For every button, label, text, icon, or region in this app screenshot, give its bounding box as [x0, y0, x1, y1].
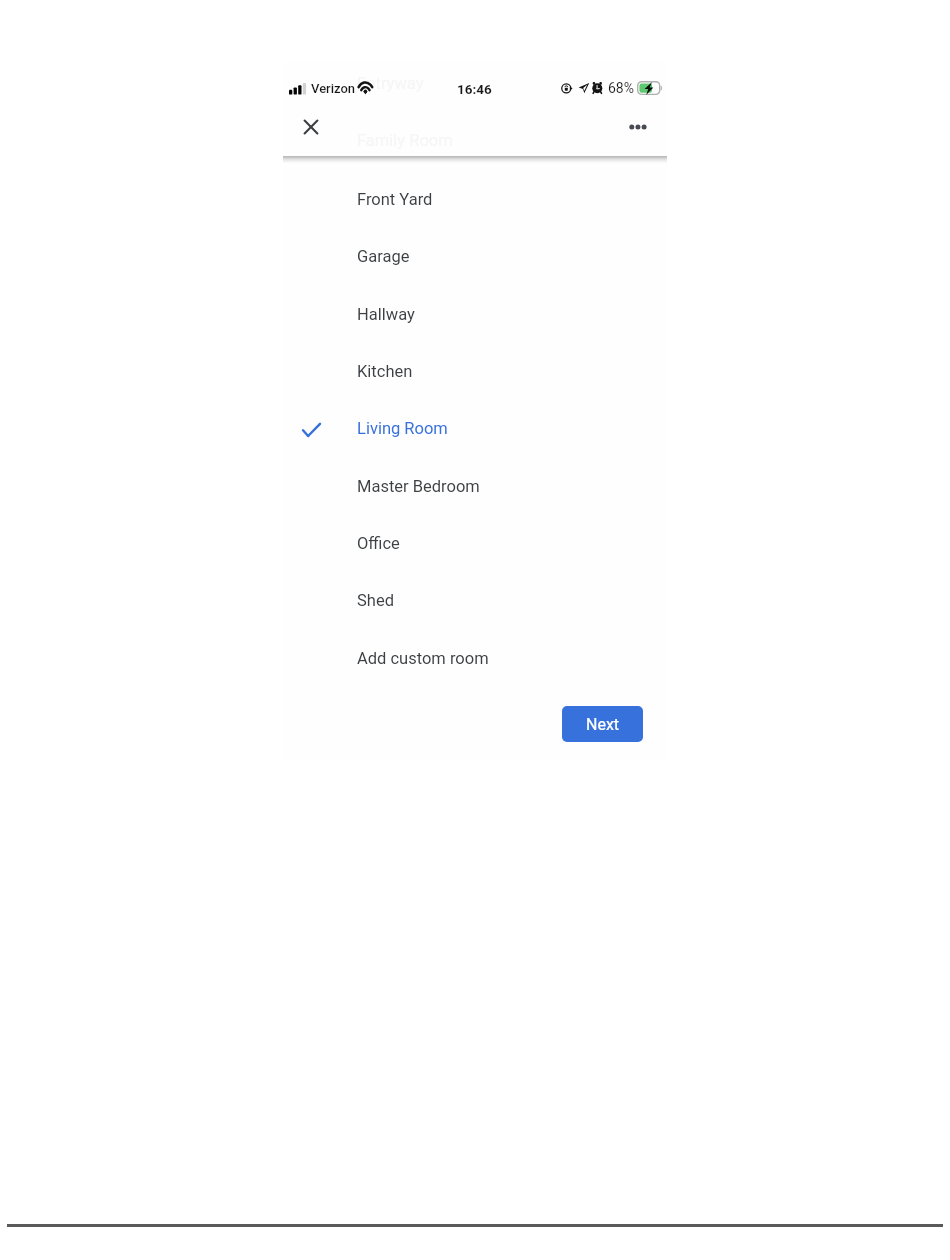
staticText: Entryway: [357, 74, 424, 93]
staticText: Hallway: [357, 305, 415, 324]
staticText: Shed: [357, 591, 394, 610]
button[interactable]: Office: [283, 515, 667, 572]
button[interactable]: Kitchen: [283, 343, 667, 400]
button[interactable]: Front Yard: [283, 171, 667, 228]
button[interactable]: Add custom room: [283, 630, 667, 687]
staticText: 68%: [608, 80, 634, 96]
staticText: Family Room: [357, 131, 453, 150]
button[interactable]: Next: [562, 706, 643, 742]
button[interactable]: Close: [289, 105, 333, 149]
staticText: Next: [586, 715, 620, 734]
staticText: Add custom room: [357, 649, 489, 668]
button[interactable]: Hallway: [283, 286, 667, 343]
button[interactable]: Living Room: [283, 400, 667, 457]
button[interactable]: More options: [616, 105, 660, 149]
staticText: Verizon: [311, 81, 356, 96]
staticText: Master Bedroom: [357, 477, 480, 496]
staticText: Front Yard: [357, 190, 433, 209]
staticText: Kitchen: [357, 362, 413, 381]
button[interactable]: Master Bedroom: [283, 458, 667, 515]
staticText: Office: [357, 534, 400, 553]
button[interactable]: Garage: [283, 228, 667, 285]
staticText: 16:46: [457, 81, 492, 97]
button[interactable]: Shed: [283, 572, 667, 629]
staticText: Living Room: [357, 419, 448, 438]
staticText: Garage: [357, 247, 410, 266]
